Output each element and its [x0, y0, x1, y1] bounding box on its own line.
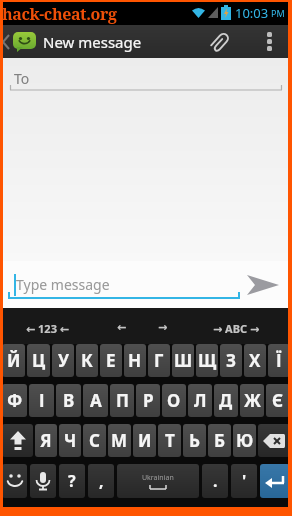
button[interactable]: Ч [59, 424, 81, 457]
button[interactable]: Ф [2, 384, 27, 417]
staticText: Б [214, 429, 226, 452]
staticText: ' [242, 470, 247, 492]
staticText: Ukrainian [142, 473, 174, 483]
staticText: І [39, 389, 45, 412]
button[interactable]: Б [208, 424, 231, 457]
button[interactable]: Д [214, 384, 238, 417]
button[interactable]: Ш [172, 344, 194, 377]
staticText: Ф [7, 389, 23, 412]
staticText: И [138, 429, 152, 452]
button[interactable]: Л [188, 384, 212, 417]
button[interactable]: І [29, 384, 54, 417]
staticText: To [14, 69, 30, 88]
staticText: Ц [32, 349, 46, 372]
button[interactable]: , [88, 464, 114, 498]
button[interactable]: Ї [268, 344, 290, 377]
button[interactable]: Й [2, 344, 25, 377]
button[interactable]: ? [59, 464, 85, 498]
staticText: М [111, 429, 128, 452]
button[interactable]: Ж [240, 384, 264, 417]
button[interactable]: . [202, 464, 228, 498]
button[interactable]: Р [136, 384, 160, 417]
staticText: Ж [244, 389, 261, 412]
button[interactable]: Т [158, 424, 181, 457]
button[interactable]: ' [231, 464, 257, 498]
button[interactable]: З [220, 344, 242, 377]
button[interactable]: → ABC → [213, 321, 260, 336]
button[interactable]: To [0, 58, 292, 98]
staticText: Ь [189, 429, 200, 452]
staticText: Ї [276, 349, 282, 372]
button[interactable] [246, 261, 292, 308]
button[interactable]: Ц [27, 344, 50, 377]
staticText: . [213, 470, 218, 492]
button[interactable] [259, 25, 279, 58]
button[interactable]: Я [35, 424, 57, 457]
button[interactable]: Ь [183, 424, 206, 457]
staticText: Ш [174, 349, 193, 372]
button[interactable]: Н [124, 344, 146, 377]
button[interactable] [2, 464, 27, 498]
staticText: Ч [64, 429, 77, 452]
staticText: PM [271, 7, 285, 19]
button[interactable]: У [52, 344, 74, 377]
staticText: Щ [198, 349, 217, 372]
button[interactable]: М [108, 424, 131, 457]
staticText: Р [143, 389, 154, 412]
staticText: ? [68, 470, 76, 492]
button[interactable]: Е [100, 344, 122, 377]
staticText: Д [219, 389, 233, 412]
button[interactable]: → [158, 321, 168, 334]
button[interactable]: Є [266, 384, 290, 417]
staticText: Н [128, 349, 142, 372]
staticText: 10:03 [235, 4, 269, 22]
staticText: А [90, 389, 102, 412]
staticText: Й [7, 349, 21, 372]
staticText: Е [106, 349, 116, 372]
button[interactable] [3, 35, 10, 49]
staticText: П [116, 389, 129, 412]
button[interactable]: ← [117, 321, 127, 334]
staticText: New message [43, 32, 142, 52]
staticText: О [167, 389, 181, 412]
button[interactable]: Ю [233, 424, 256, 457]
button[interactable]: П [110, 384, 134, 417]
button[interactable]: ← 123 ← [26, 321, 70, 336]
button[interactable]: Type message [14, 261, 246, 308]
staticText: Я [40, 429, 52, 452]
staticText: Ю [236, 429, 254, 452]
staticText: З [226, 349, 237, 372]
staticText: Х [249, 349, 261, 372]
button[interactable]: С [83, 424, 106, 457]
button[interactable]: И [133, 424, 156, 457]
staticText: У [58, 349, 69, 372]
staticText: С [89, 429, 100, 452]
button[interactable]: А [83, 384, 108, 417]
button[interactable]: Щ [196, 344, 218, 377]
staticText: К [81, 349, 93, 372]
button[interactable]: Ukrainian [117, 464, 199, 498]
button[interactable]: Г [148, 344, 170, 377]
button[interactable] [199, 25, 239, 58]
button[interactable]: О [162, 384, 186, 417]
staticText: Т [165, 429, 175, 452]
staticText: Г [154, 349, 164, 372]
button[interactable] [260, 464, 290, 498]
staticText: В [63, 389, 75, 412]
button[interactable]: Х [244, 344, 266, 377]
staticText: Type message [16, 275, 110, 294]
button[interactable]: В [56, 384, 81, 417]
button[interactable] [2, 424, 33, 457]
staticText: hack-cheat.org [2, 3, 117, 25]
staticText: , [99, 470, 104, 492]
button[interactable] [30, 464, 56, 498]
staticText: Є [272, 389, 284, 412]
button[interactable] [258, 424, 290, 457]
button[interactable]: К [76, 344, 98, 377]
staticText: Л [194, 389, 207, 412]
